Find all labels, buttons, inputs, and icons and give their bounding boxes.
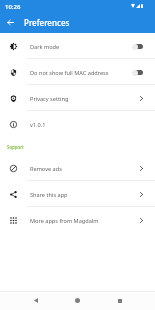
staticText: Do not show full MAC address	[30, 69, 129, 77]
button[interactable]: Share this app	[0, 181, 155, 207]
staticText: Support	[7, 144, 24, 150]
button[interactable]: Back	[0, 13, 21, 32]
staticText: Privacy setting	[30, 95, 129, 103]
button[interactable]: Do not show full MAC address	[0, 59, 155, 85]
button[interactable]: Privacy setting	[0, 85, 155, 111]
staticText: Preferences	[24, 17, 70, 28]
button[interactable]: Back	[25, 291, 46, 310]
button[interactable]: Remove ads	[0, 155, 155, 181]
staticText: More apps from Magdalm	[30, 217, 129, 225]
staticText: Share this app	[30, 191, 129, 199]
staticText: v1.0.1	[30, 121, 129, 129]
staticText: 10:26	[5, 3, 21, 11]
button[interactable]: Recent apps	[109, 291, 130, 310]
button[interactable]: More apps from Magdalm	[0, 207, 155, 233]
staticText: Remove ads	[30, 165, 129, 173]
button[interactable]: Dark mode	[0, 33, 155, 59]
button[interactable]: Home	[67, 291, 88, 310]
staticText: Dark mode	[30, 43, 129, 51]
button[interactable]: v1.0.1	[0, 111, 155, 137]
